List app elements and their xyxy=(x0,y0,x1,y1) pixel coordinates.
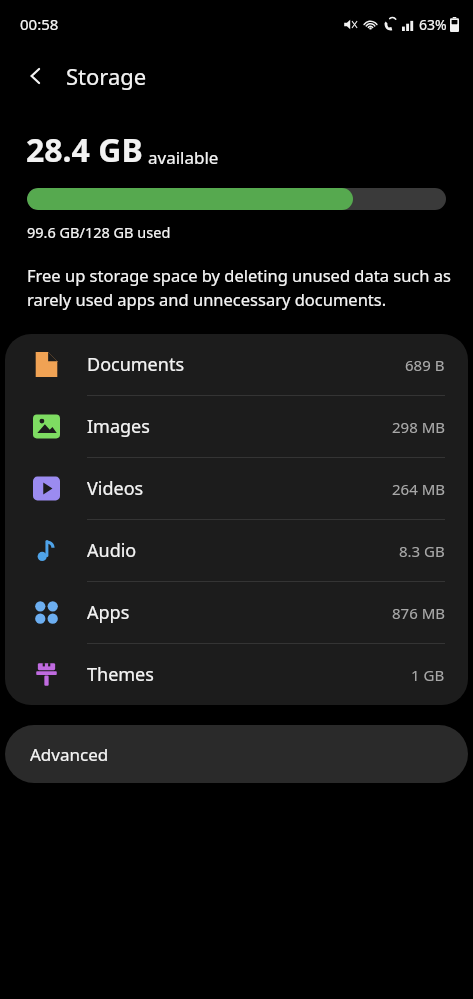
staticText: 298 MB xyxy=(392,417,445,437)
button[interactable]: Videos xyxy=(5,458,468,520)
button[interactable]: Back xyxy=(16,56,56,96)
staticText: 689 B xyxy=(405,355,445,375)
staticText: 00:58 xyxy=(20,14,59,34)
staticText: Videos xyxy=(87,476,392,501)
button[interactable]: Themes xyxy=(5,644,468,705)
button[interactable]: Apps xyxy=(5,582,468,644)
button[interactable]: Audio xyxy=(5,520,468,582)
staticText: 1 GB xyxy=(411,665,445,685)
staticText: available xyxy=(148,146,219,169)
staticText: 8.3 GB xyxy=(399,541,445,561)
staticText: Storage xyxy=(66,61,147,91)
staticText: Free up storage space by deleting unused… xyxy=(27,264,451,311)
button[interactable]: Documents xyxy=(5,334,468,396)
staticText: 63% xyxy=(419,15,447,34)
staticText: 264 MB xyxy=(392,479,445,499)
staticText: Audio xyxy=(87,538,399,563)
staticText: Advanced xyxy=(30,743,109,766)
staticText: 28.4 GB xyxy=(26,128,143,172)
staticText: Documents xyxy=(87,352,405,377)
staticText: 876 MB xyxy=(392,603,445,623)
staticText: Apps xyxy=(87,600,392,625)
button[interactable]: Images xyxy=(5,396,468,458)
staticText: Images xyxy=(87,414,392,439)
staticText: 99.6 GB/128 GB used xyxy=(27,222,171,242)
button[interactable]: Advanced xyxy=(5,725,468,783)
staticText: Themes xyxy=(87,662,411,687)
